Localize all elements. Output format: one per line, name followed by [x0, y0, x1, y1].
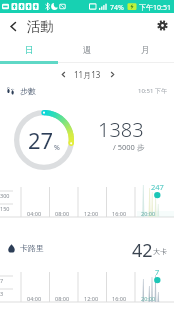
staticText: 150	[0, 205, 10, 212]
staticText: / 5000 步	[113, 142, 145, 152]
staticText: 大卡	[153, 247, 167, 256]
button[interactable]: 日	[0, 40, 58, 61]
staticText: 10:51 下午	[138, 87, 167, 95]
staticText: 300	[0, 192, 10, 199]
staticText: 卡路里	[20, 243, 44, 253]
button[interactable]: Settings	[154, 17, 171, 34]
staticText: %	[54, 143, 60, 153]
staticText: 27	[28, 125, 54, 155]
staticText: 步數	[20, 86, 36, 96]
staticText: 月	[141, 45, 150, 56]
staticText: 08:00	[55, 295, 70, 302]
staticText: 74%	[110, 3, 124, 13]
staticText: 活動	[27, 18, 54, 35]
staticText: 20:00	[141, 210, 156, 217]
staticText: 04:00	[27, 295, 42, 302]
staticText: 11月13	[74, 69, 101, 80]
staticText: 1383	[98, 116, 144, 143]
staticText: 7	[155, 267, 160, 277]
staticText: 42	[132, 238, 153, 258]
staticText: 16:00	[112, 295, 127, 302]
staticText: 3	[0, 290, 4, 297]
button[interactable]: 月	[116, 40, 174, 61]
staticText: 週	[83, 45, 92, 56]
staticText: 日	[25, 45, 34, 56]
staticText: 下午10:51	[139, 3, 171, 13]
staticText: 08:00	[55, 210, 70, 217]
button[interactable]: Next day	[104, 66, 120, 82]
staticText: 12:00	[84, 295, 99, 302]
staticText: 12:00	[84, 210, 99, 217]
button[interactable]: Previous day	[55, 66, 71, 82]
staticText: 20:00	[141, 295, 156, 302]
staticText: 7	[0, 277, 4, 284]
button[interactable]: 週	[58, 40, 116, 61]
button[interactable]: Back	[4, 17, 23, 36]
staticText: 247	[151, 182, 164, 192]
staticText: 04:00	[27, 210, 42, 217]
staticText: 16:00	[112, 210, 127, 217]
